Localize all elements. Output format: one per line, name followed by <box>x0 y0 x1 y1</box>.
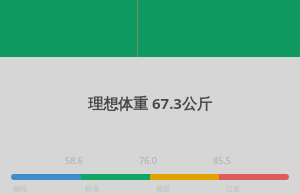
staticText: 85.5 <box>213 154 231 166</box>
staticText: 过重 <box>226 184 240 193</box>
staticText: 76.0 <box>139 154 157 166</box>
button[interactable]: Weight range bar <box>11 174 289 180</box>
staticText: 偏轻 <box>13 184 27 193</box>
staticText: 理想体重 67.3公斤 <box>88 93 212 113</box>
staticText: 标准 <box>85 184 99 193</box>
staticText: 偏重 <box>156 184 170 193</box>
staticText: 58.6 <box>65 154 83 166</box>
button[interactable]: Weight trend chart <box>0 0 300 57</box>
